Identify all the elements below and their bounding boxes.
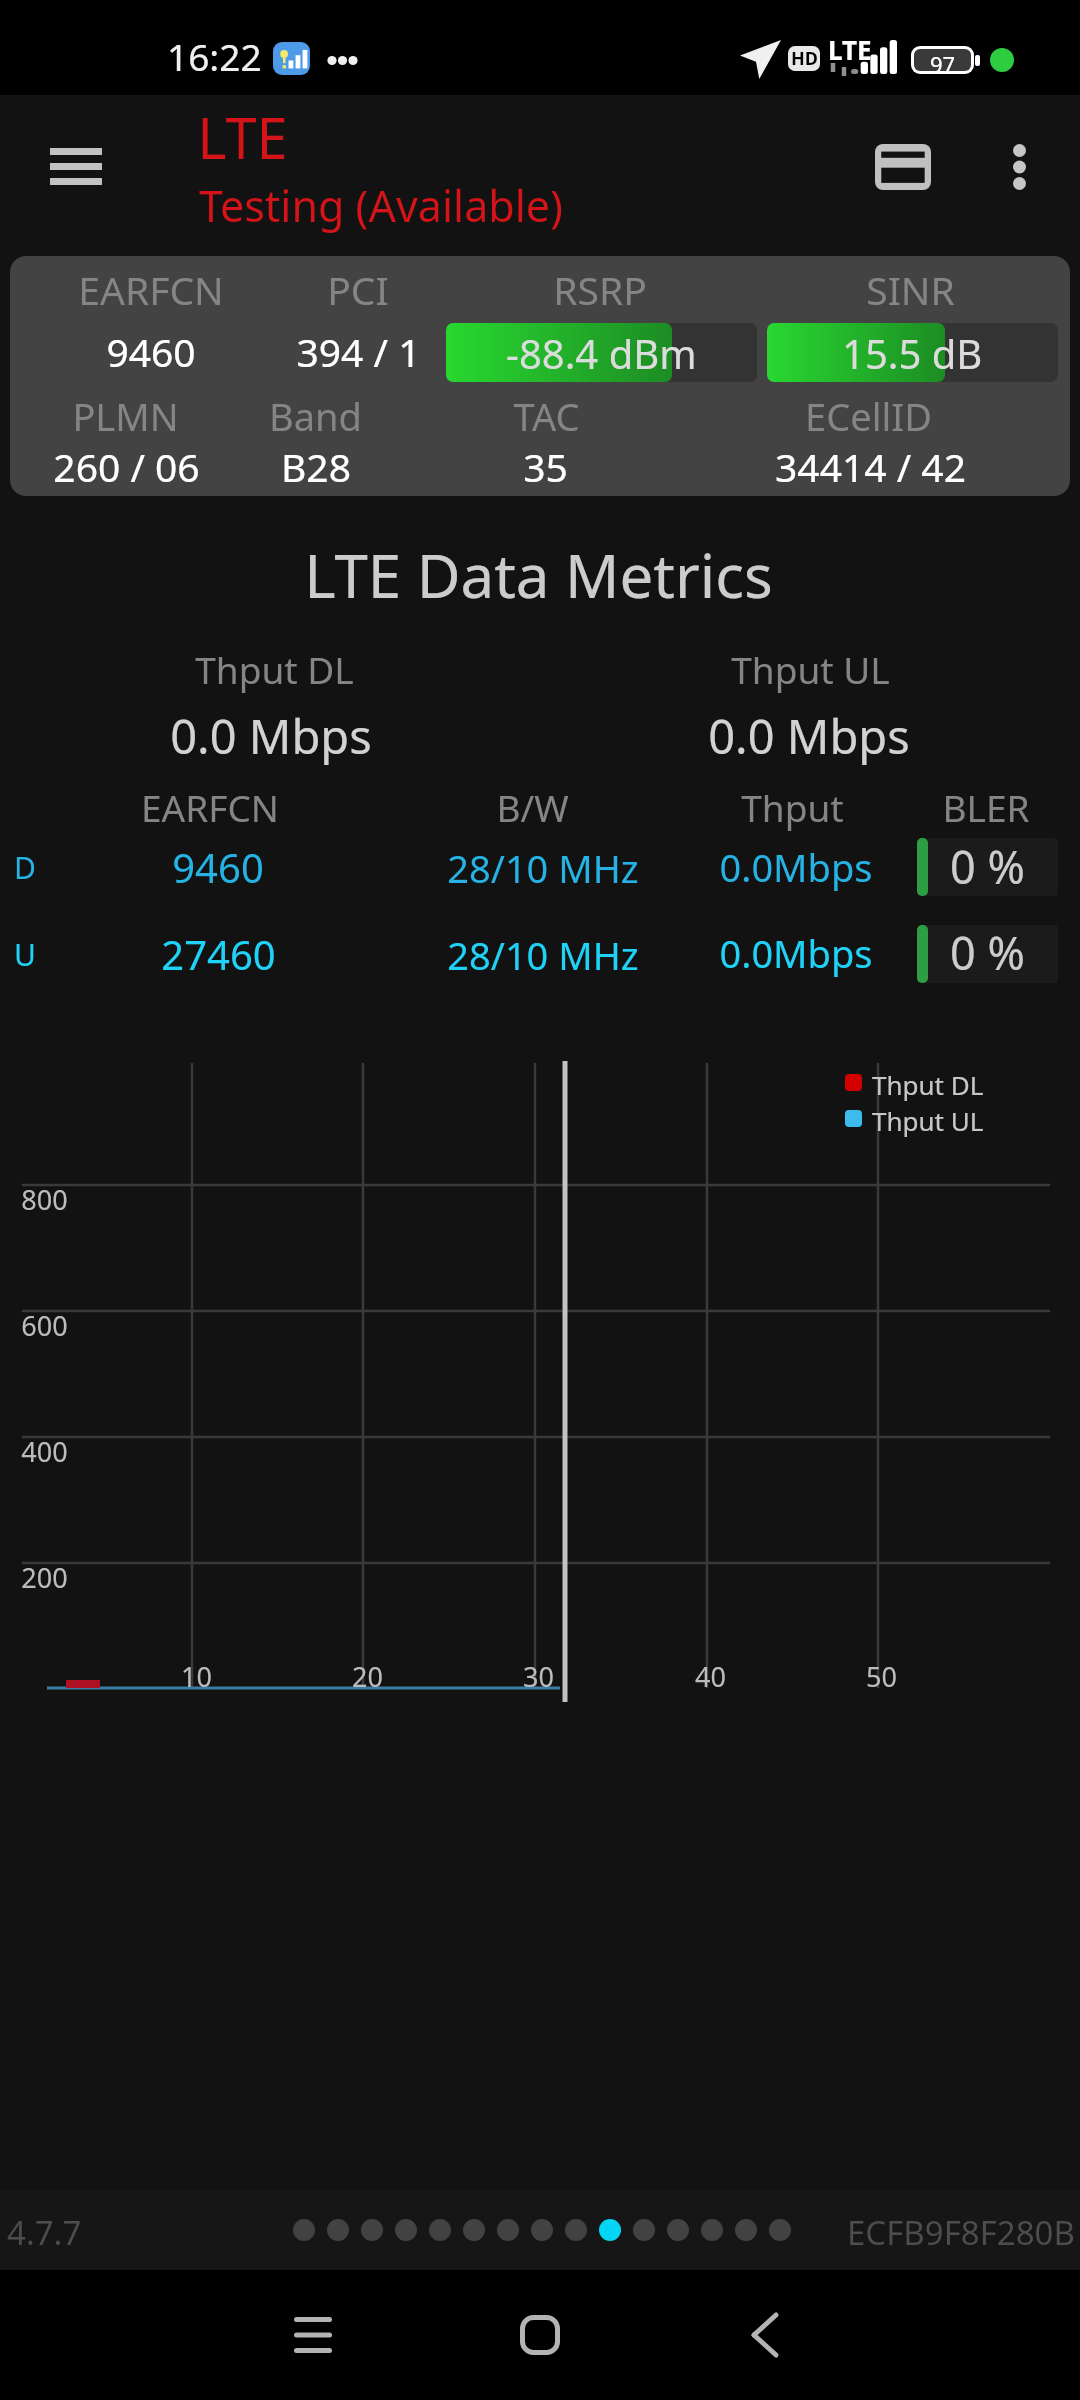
staticText: SINR	[866, 263, 955, 316]
staticText: ECellID	[805, 390, 932, 442]
button[interactable]: Page 9	[565, 2219, 587, 2241]
staticText: 0 %	[950, 922, 1025, 983]
button[interactable]: Page 4	[395, 2219, 417, 2241]
staticText: 200	[21, 1559, 68, 1596]
button[interactable]: Recents	[258, 2280, 368, 2390]
staticText: 0.0Mbps	[719, 927, 873, 979]
button[interactable]: Page 6	[463, 2219, 485, 2241]
staticText: 0.0Mbps	[719, 841, 873, 893]
staticText: 800	[21, 1181, 68, 1218]
staticText: 9460	[106, 325, 196, 378]
staticText: ECFB9F8F280B	[847, 2210, 1075, 2255]
staticText: 4.7.7	[7, 2210, 82, 2255]
staticText: Band	[269, 390, 362, 442]
staticText: 9460	[172, 840, 264, 894]
staticText: Thput DL	[872, 1067, 984, 1102]
staticText: -88.4 dBm	[506, 326, 697, 380]
staticText: 35	[523, 440, 568, 493]
button[interactable]: Page 8	[531, 2219, 553, 2241]
staticText: LTE Data Metrics	[304, 534, 773, 616]
button[interactable]: Back	[710, 2280, 820, 2390]
staticText: 28/10 MHz	[447, 842, 639, 894]
staticText: 16:22	[167, 31, 262, 81]
button[interactable]: Menu	[28, 118, 124, 214]
button[interactable]: Uplink carrier row	[0, 923, 1070, 985]
button[interactable]: Page 14	[735, 2219, 757, 2241]
staticText: 600	[21, 1307, 68, 1344]
staticText: BLER	[942, 782, 1030, 832]
staticText: HD	[791, 46, 818, 71]
button[interactable]: Page 2	[327, 2219, 349, 2241]
staticText: 394 / 1	[296, 325, 421, 378]
staticText: EARFCN	[78, 263, 224, 316]
staticText: 0.0 Mbps	[170, 704, 372, 768]
button[interactable]: Page 7	[497, 2219, 519, 2241]
staticText: 10	[181, 1658, 212, 1695]
staticText: PCI	[327, 263, 389, 316]
staticText: 20	[352, 1658, 383, 1695]
staticText: Thput UL	[731, 644, 890, 694]
staticText: RSRP	[553, 263, 647, 316]
staticText: TAC	[513, 390, 580, 442]
staticText: LTE	[197, 99, 288, 175]
staticText: Thput	[741, 782, 844, 832]
staticText: B/W	[496, 782, 569, 832]
button[interactable]: Page 3	[361, 2219, 383, 2241]
staticText: 0.0 Mbps	[708, 704, 910, 768]
staticText: 28/10 MHz	[447, 929, 639, 981]
staticText: 15.5 dB	[842, 326, 983, 380]
staticText: LTE	[828, 32, 872, 67]
staticText: 400	[21, 1433, 68, 1470]
button[interactable]: Page 10	[599, 2219, 621, 2241]
button[interactable]: Page 13	[701, 2219, 723, 2241]
button[interactable]: More options	[971, 119, 1067, 215]
staticText: 260 / 06	[53, 440, 200, 493]
staticText: 0 %	[950, 836, 1025, 897]
button[interactable]: Page 12	[667, 2219, 689, 2241]
staticText: 27460	[161, 927, 276, 981]
button[interactable]: Page 5	[429, 2219, 451, 2241]
button[interactable]: Downlink carrier row	[0, 836, 1070, 898]
staticText: 97	[930, 49, 956, 71]
staticText: Thput DL	[195, 644, 354, 694]
staticText: 30	[523, 1658, 554, 1695]
staticText: 50	[866, 1658, 897, 1695]
button[interactable]: Page 15	[769, 2219, 791, 2241]
button[interactable]: Page 1	[293, 2219, 315, 2241]
staticText: PLMN	[72, 390, 179, 442]
staticText: 34414 / 42	[775, 440, 966, 493]
staticText: B28	[281, 440, 351, 493]
button[interactable]: Serving cell info	[10, 256, 1070, 496]
staticText: EARFCN	[141, 782, 279, 832]
staticText: 40	[695, 1658, 726, 1695]
staticText: Testing (Available)	[199, 176, 563, 235]
staticText: Thput UL	[872, 1103, 984, 1138]
button[interactable]: Layout	[855, 119, 951, 215]
staticText: U	[14, 934, 36, 975]
button[interactable]: Home	[485, 2280, 595, 2390]
button[interactable]: Page 11	[633, 2219, 655, 2241]
staticText: D	[14, 847, 36, 888]
